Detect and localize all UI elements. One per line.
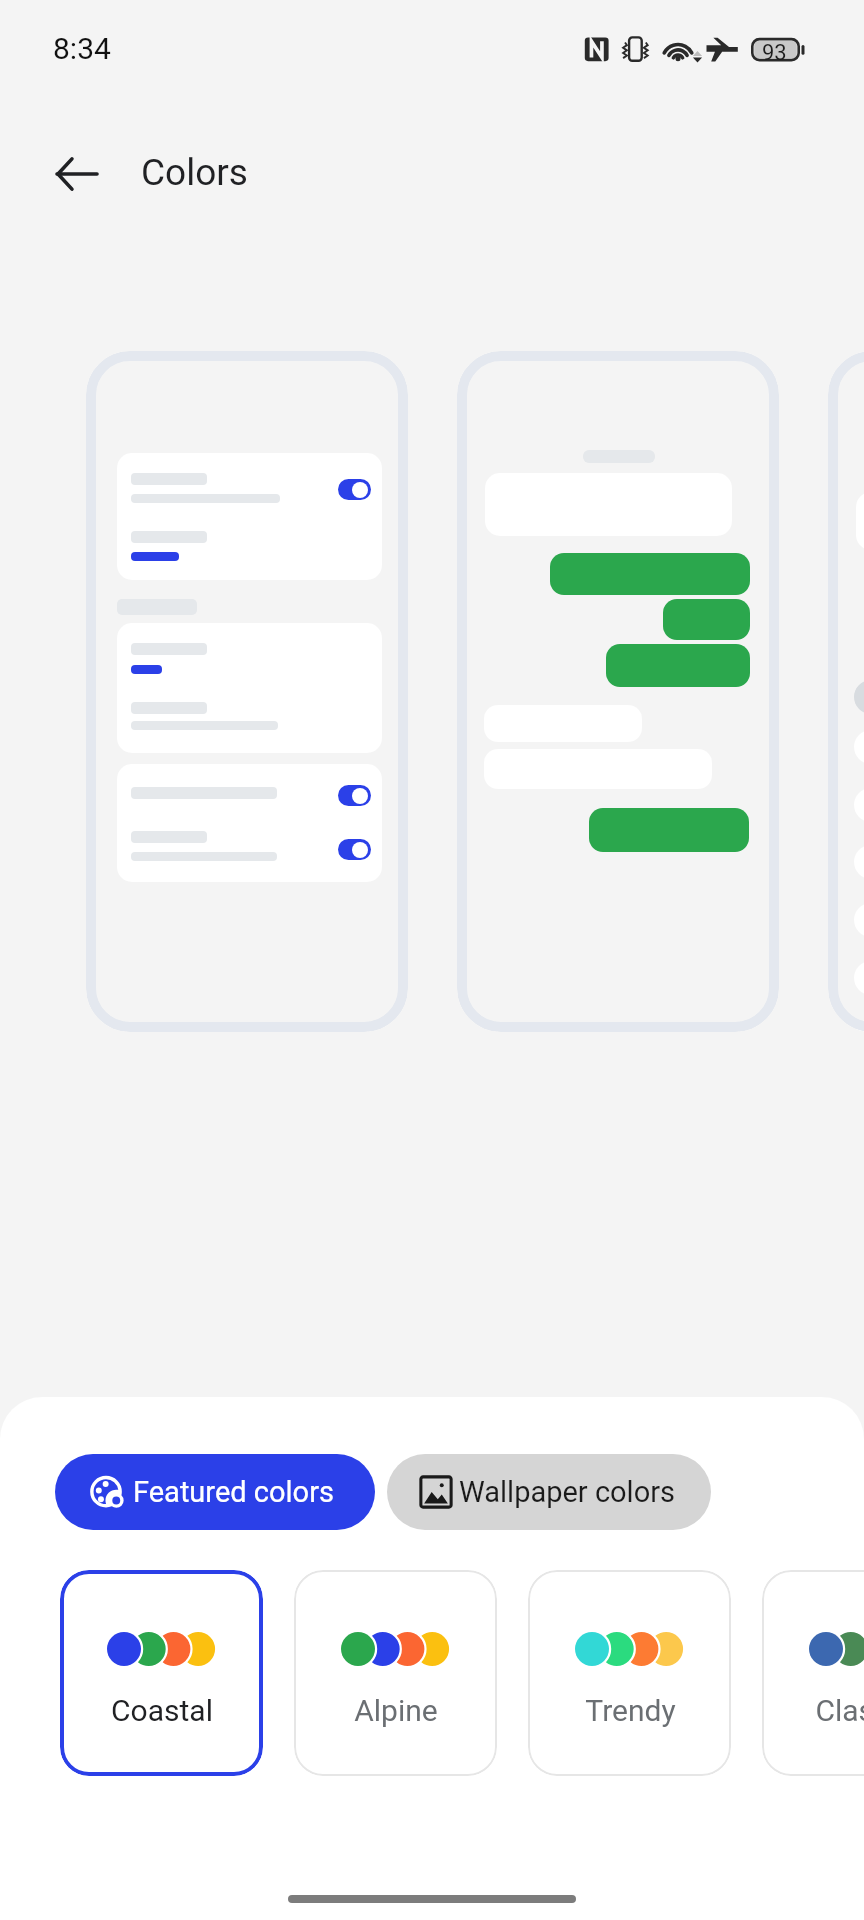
button[interactable]: Contacts theme preview bbox=[828, 351, 864, 1032]
button[interactable]: Back bbox=[45, 142, 109, 206]
staticText: Wallpaper colors bbox=[459, 1475, 675, 1509]
staticText: Alpine bbox=[354, 1693, 438, 1728]
button[interactable]: Trendy bbox=[528, 1570, 731, 1776]
staticText: Coastal bbox=[111, 1693, 213, 1728]
button[interactable]: Coastal bbox=[60, 1570, 263, 1776]
staticText: Colors bbox=[141, 151, 248, 194]
button[interactable]: Messages theme preview bbox=[457, 351, 779, 1032]
button[interactable]: Wallpaper colors bbox=[387, 1454, 711, 1530]
staticText: Featured colors bbox=[133, 1475, 334, 1509]
button[interactable]: Alpine bbox=[294, 1570, 497, 1776]
staticText: 93 bbox=[762, 40, 787, 66]
staticText: 8:34 bbox=[53, 31, 111, 66]
staticText: Classic bbox=[815, 1693, 864, 1728]
staticText: Trendy bbox=[585, 1693, 676, 1728]
button[interactable]: Settings theme preview bbox=[86, 351, 408, 1032]
button[interactable]: Featured colors bbox=[55, 1454, 375, 1530]
button[interactable]: Classic bbox=[762, 1570, 864, 1776]
